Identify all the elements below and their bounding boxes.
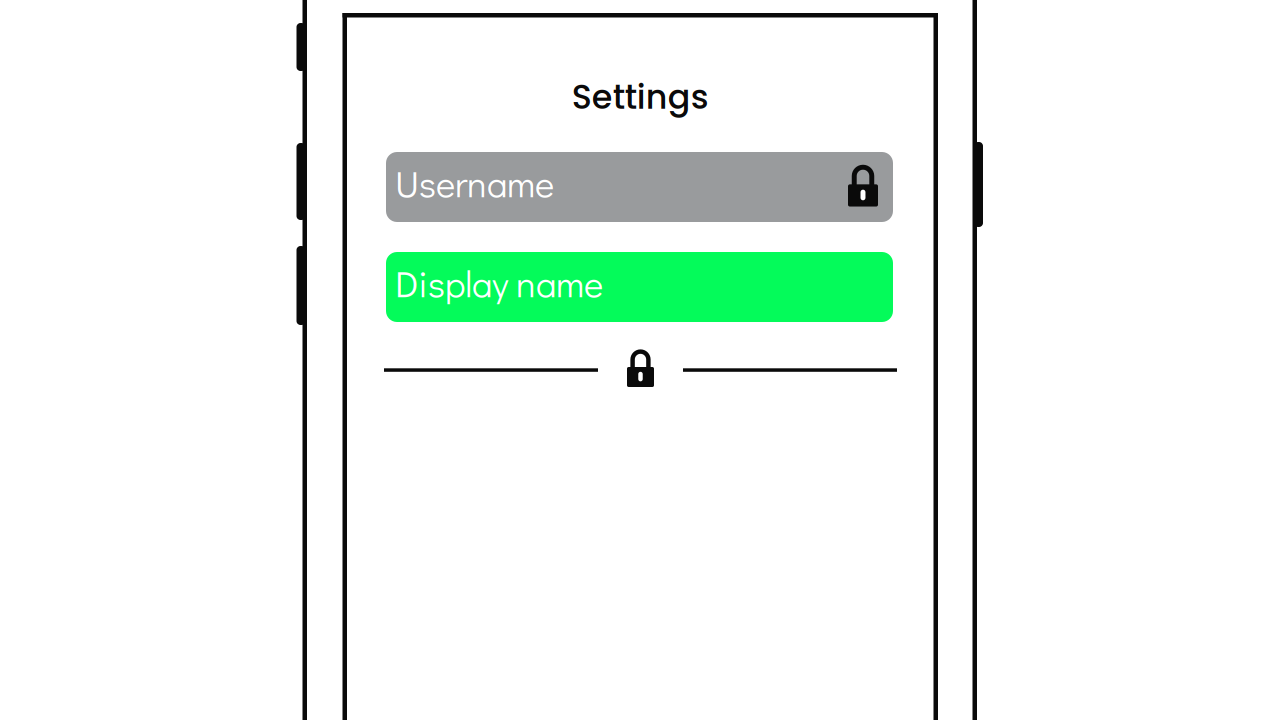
staticText: Display name <box>395 259 603 307</box>
button[interactable]: Username <box>386 152 893 222</box>
button[interactable]: Display name <box>386 252 893 322</box>
staticText: Username <box>395 159 554 207</box>
staticText: Settings <box>572 74 709 120</box>
